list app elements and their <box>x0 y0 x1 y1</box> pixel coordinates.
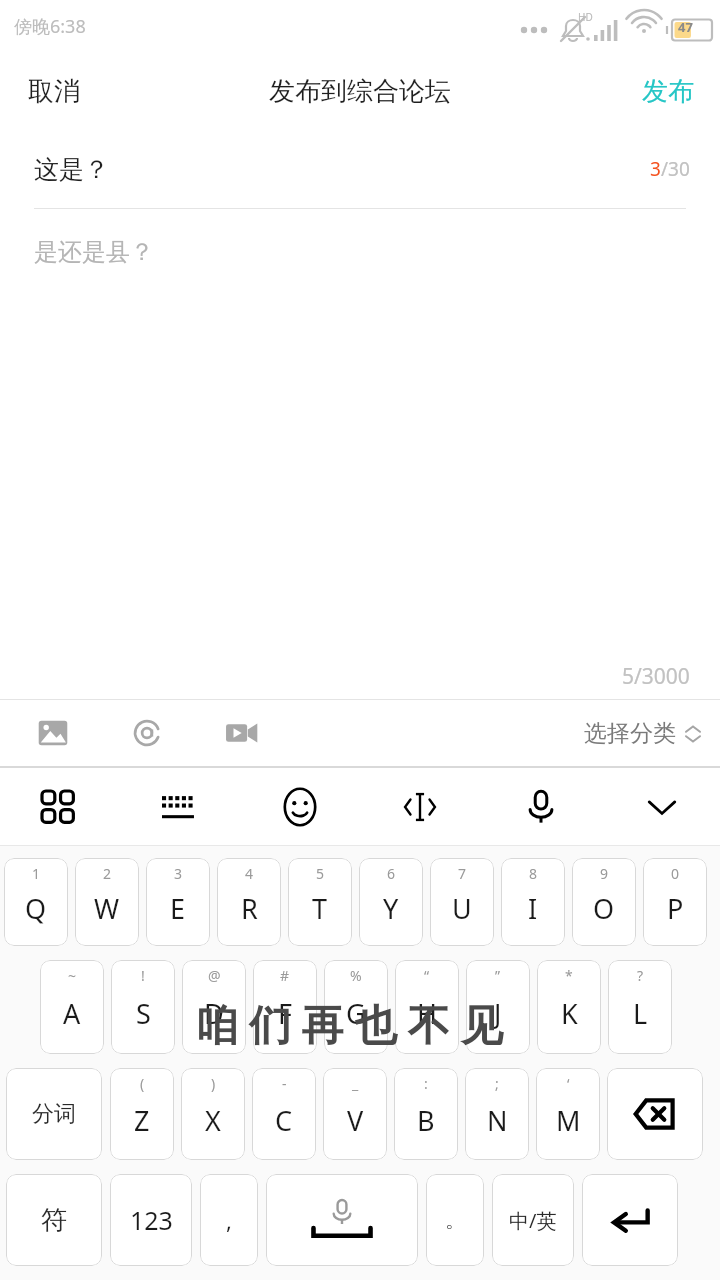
button[interactable]: , <box>200 1174 258 1266</box>
button[interactable]: 这是？ <box>0 130 720 208</box>
button[interactable]: Edit cursor <box>388 775 452 839</box>
button[interactable]: @ <box>182 960 246 1054</box>
button[interactable]: : <box>394 1068 458 1160</box>
staticText: P <box>667 890 684 927</box>
button[interactable]: 3 <box>146 858 210 946</box>
button[interactable]: Mention <box>116 702 178 764</box>
button[interactable]: 4 <box>217 858 281 946</box>
button[interactable]: - <box>252 1068 316 1160</box>
button[interactable]: Keyboard apps <box>26 775 90 839</box>
staticText: 发布 <box>642 75 694 108</box>
button[interactable]: Voice input <box>509 775 573 839</box>
staticText: L <box>633 995 648 1032</box>
staticText: I <box>528 890 538 927</box>
staticText: R <box>241 890 258 927</box>
button[interactable]: 。 <box>426 1174 484 1266</box>
button[interactable]: 5 <box>288 858 352 946</box>
staticText: J <box>494 995 502 1032</box>
button[interactable]: Backspace <box>607 1068 703 1160</box>
button[interactable]: 发布 <box>616 61 720 122</box>
staticText: 7 <box>458 864 467 883</box>
button[interactable]: Add video <box>210 702 272 764</box>
staticText: C <box>275 1102 293 1139</box>
staticText: 5 <box>316 864 325 883</box>
button[interactable]: 中/英 <box>492 1174 574 1266</box>
staticText: 选择分类 <box>584 719 676 748</box>
staticText: 傍晚6:38 <box>14 14 86 39</box>
staticText: “ <box>424 966 430 985</box>
button[interactable]: % <box>324 960 388 1054</box>
staticText: N <box>487 1102 508 1139</box>
button[interactable]: 2 <box>75 858 139 946</box>
staticText: 6 <box>387 864 396 883</box>
button[interactable]: Switch keyboard layout <box>147 775 211 839</box>
staticText: 0 <box>671 864 680 883</box>
staticText: 123 <box>130 1203 173 1237</box>
staticText: B <box>417 1102 435 1139</box>
button[interactable]: ! <box>111 960 175 1054</box>
button[interactable]: ( <box>110 1068 174 1160</box>
staticText: V <box>347 1102 364 1139</box>
button[interactable]: 9 <box>572 858 636 946</box>
button[interactable]: ~ <box>40 960 104 1054</box>
staticText: - <box>282 1074 287 1093</box>
button[interactable]: Hide keyboard <box>630 775 694 839</box>
staticText: G <box>346 995 366 1032</box>
staticText: 中/英 <box>509 1207 557 1234</box>
staticText: Z <box>134 1102 150 1139</box>
button[interactable]: 取消 <box>0 61 108 122</box>
staticText: 。 <box>445 1208 465 1233</box>
button[interactable]: # <box>253 960 317 1054</box>
staticText: 1 <box>32 864 41 883</box>
button[interactable] <box>266 1174 418 1266</box>
button[interactable]: Enter <box>582 1174 678 1266</box>
staticText: 是还是县？ <box>34 237 154 267</box>
button[interactable]: 是还是县？ <box>0 209 720 295</box>
button[interactable]: 6 <box>359 858 423 946</box>
button[interactable]: 0 <box>643 858 707 946</box>
button[interactable]: ? <box>608 960 672 1054</box>
staticText: K <box>561 995 578 1032</box>
button[interactable]: 8 <box>501 858 565 946</box>
staticText: /30 <box>661 156 690 182</box>
staticText: ” <box>495 966 501 985</box>
staticText: F <box>278 995 293 1032</box>
staticText: 3 <box>650 156 661 182</box>
button[interactable]: 7 <box>430 858 494 946</box>
button[interactable]: ” <box>466 960 530 1054</box>
button[interactable]: 选择分类 <box>564 709 720 758</box>
button[interactable]: 分词 <box>6 1068 102 1160</box>
staticText: D <box>204 995 224 1032</box>
button[interactable]: 1 <box>4 858 68 946</box>
other: Backspace <box>633 1097 677 1131</box>
staticText: Q <box>25 890 47 927</box>
button[interactable]: ‘ <box>536 1068 600 1160</box>
staticText: ? <box>637 966 644 985</box>
staticText: 8 <box>529 864 538 883</box>
staticText: % <box>350 966 362 985</box>
staticText: 咱 们 再 也 不 见 <box>196 995 503 1052</box>
button[interactable]: 符 <box>6 1174 102 1266</box>
staticText: ) <box>211 1074 216 1093</box>
staticText: S <box>136 995 151 1032</box>
button[interactable]: _ <box>323 1068 387 1160</box>
staticText: X <box>205 1102 221 1139</box>
button[interactable]: * <box>537 960 601 1054</box>
staticText: U <box>452 890 472 927</box>
staticText: ! <box>141 966 145 985</box>
staticText: ; <box>495 1074 499 1093</box>
staticText: : <box>424 1074 428 1093</box>
button[interactable]: ) <box>181 1068 245 1160</box>
button[interactable]: Emoji <box>268 775 332 839</box>
button[interactable]: ; <box>465 1068 529 1160</box>
staticText: @ <box>208 966 221 985</box>
staticText: A <box>63 995 81 1032</box>
button[interactable]: Add image <box>22 702 84 764</box>
button[interactable]: “ <box>395 960 459 1054</box>
button[interactable]: 123 <box>110 1174 192 1266</box>
staticText: E <box>170 890 186 927</box>
staticText: 符 <box>41 1204 67 1237</box>
staticText: 9 <box>600 864 609 883</box>
staticText: ‘ <box>567 1074 570 1093</box>
staticText: 分词 <box>32 1100 76 1128</box>
